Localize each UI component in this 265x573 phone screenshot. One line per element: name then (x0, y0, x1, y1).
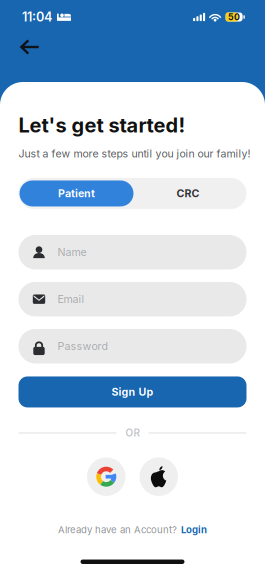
button[interactable]: Name (18, 235, 246, 269)
button[interactable]: Back (15, 34, 45, 60)
staticText: Sign Up (111, 385, 153, 398)
button[interactable]: Sign Up (18, 376, 246, 407)
staticText: Email (57, 293, 84, 306)
staticText: CRC (176, 187, 199, 200)
staticText: 50 (228, 12, 240, 22)
button[interactable]: Already have an Account? (58, 524, 207, 535)
staticText: Patient (58, 187, 95, 200)
button[interactable]: Sign up with Apple (139, 457, 178, 496)
staticText: Name (57, 246, 86, 259)
staticText: OR (125, 427, 139, 439)
button[interactable]: CRC (133, 180, 242, 206)
button[interactable]: Email (18, 282, 246, 316)
staticText: Let's get started! (18, 113, 185, 137)
staticText: 11:04 (22, 9, 52, 25)
staticText: Already have an Account? (58, 524, 177, 535)
button[interactable]: Sign up with Google (87, 457, 125, 496)
staticText: Password (57, 340, 108, 353)
button[interactable]: Password (18, 329, 246, 363)
button[interactable]: Patient (19, 180, 133, 206)
staticText: Login (181, 524, 207, 535)
staticText: Just a few more steps until you join our… (18, 147, 250, 160)
